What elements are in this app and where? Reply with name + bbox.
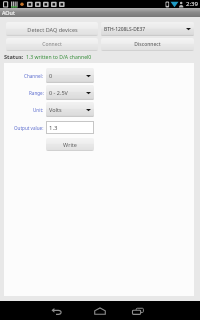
staticText: Connect bbox=[42, 41, 62, 48]
staticText: Output value: bbox=[14, 125, 44, 131]
staticText: 0 bbox=[49, 72, 53, 79]
button[interactable]: Back bbox=[43, 301, 71, 320]
staticText: AOut bbox=[2, 9, 15, 16]
button[interactable]: 0 - 2.5V bbox=[46, 85, 94, 100]
button[interactable]: Detect DAQ devices bbox=[6, 22, 98, 36]
button[interactable]: Recent apps bbox=[124, 301, 152, 320]
button[interactable]: 1.3 bbox=[46, 121, 94, 134]
staticText: 1.3 written to D/A channel0 bbox=[26, 54, 92, 61]
staticText: 0 - 2.5V bbox=[49, 89, 68, 96]
staticText: Detect DAQ devices bbox=[27, 26, 78, 33]
button[interactable]: Connect bbox=[6, 38, 98, 51]
button[interactable]: Disconnect bbox=[101, 38, 194, 51]
staticText: Volts bbox=[49, 106, 62, 113]
button[interactable]: Write bbox=[46, 138, 94, 151]
staticText: Unit: bbox=[33, 107, 44, 113]
staticText: Status: bbox=[4, 53, 24, 61]
staticText: 1.3 bbox=[49, 124, 58, 132]
staticText: 2:39 bbox=[186, 0, 198, 8]
button[interactable]: 0 bbox=[46, 68, 94, 83]
staticText: Disconnect bbox=[134, 41, 161, 48]
staticText: Channel: bbox=[24, 73, 44, 79]
staticText: BTH-1208LS-DE37 bbox=[104, 26, 146, 33]
button[interactable]: Volts bbox=[46, 102, 94, 117]
staticText: Write bbox=[63, 141, 77, 148]
button[interactable]: BTH-1208LS-DE37 bbox=[101, 22, 194, 36]
staticText: Range: bbox=[29, 90, 44, 96]
button[interactable]: Home bbox=[86, 301, 114, 320]
